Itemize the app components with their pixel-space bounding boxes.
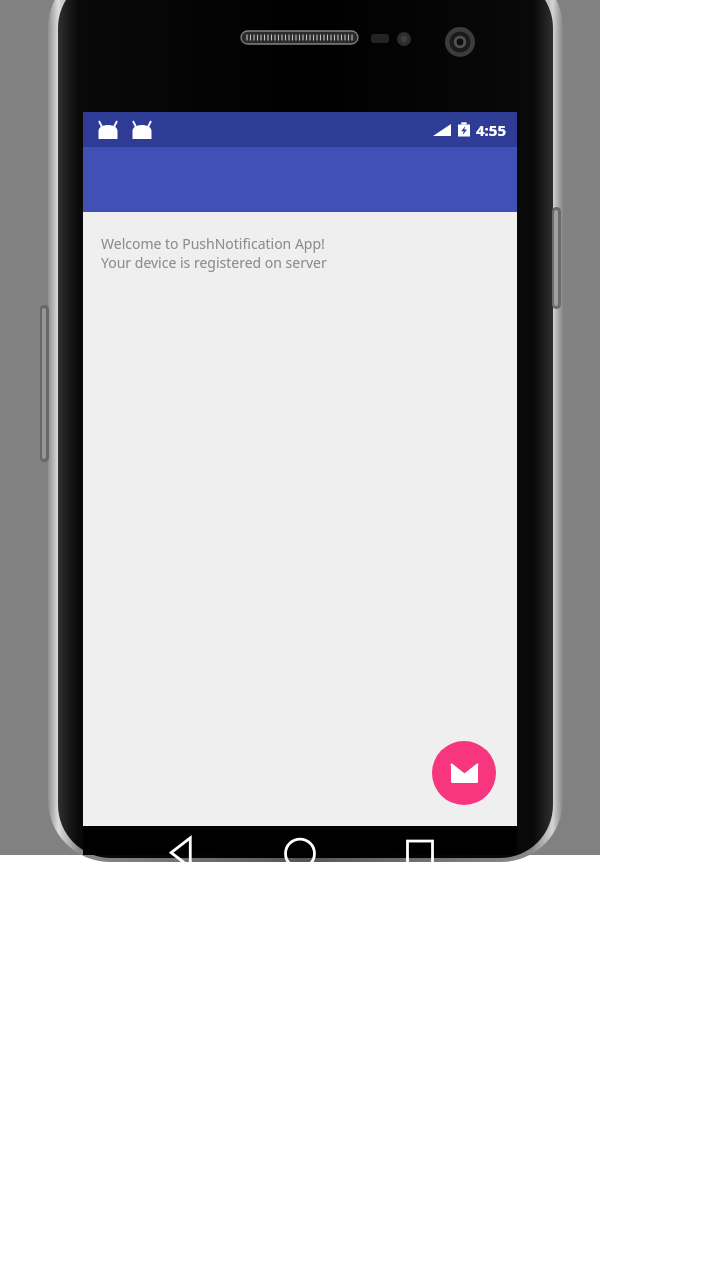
staticText: Your device is registered on server <box>101 253 327 272</box>
staticText: 4:55 <box>476 120 506 140</box>
button[interactable]: Home <box>266 826 334 855</box>
button[interactable]: Recent apps <box>386 826 454 855</box>
staticText: Welcome to PushNotification App! <box>101 234 325 253</box>
button[interactable]: Send notification <box>432 741 496 805</box>
button[interactable]: Back <box>148 826 216 855</box>
